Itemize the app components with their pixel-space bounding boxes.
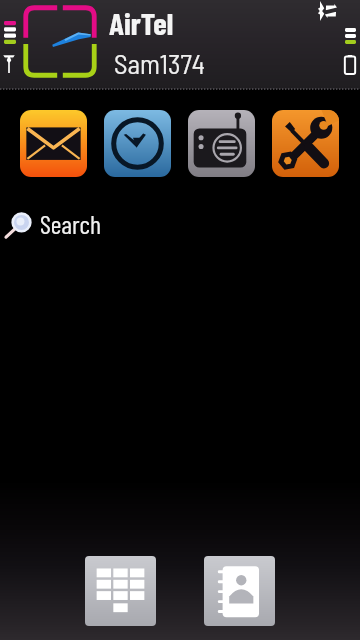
staticText: Sam1374	[114, 47, 205, 79]
button[interactable]: Messaging	[20, 110, 87, 177]
staticText: Search	[40, 208, 101, 239]
button[interactable]: Search	[4, 206, 101, 240]
button[interactable]: Dialer	[85, 556, 156, 626]
button[interactable]: Settings	[272, 110, 339, 177]
button[interactable]: Clock	[104, 110, 171, 177]
button[interactable]: Contacts	[204, 556, 275, 626]
button[interactable]: Profile	[23, 5, 97, 78]
staticText: AirTel	[109, 4, 174, 41]
button[interactable]: Radio	[188, 110, 255, 177]
